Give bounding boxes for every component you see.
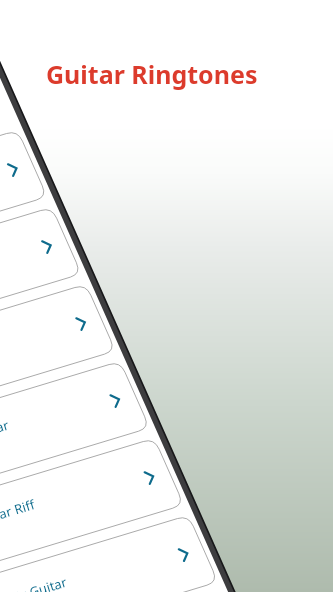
button[interactable]: Guitar Ringtones [0,0,333,592]
